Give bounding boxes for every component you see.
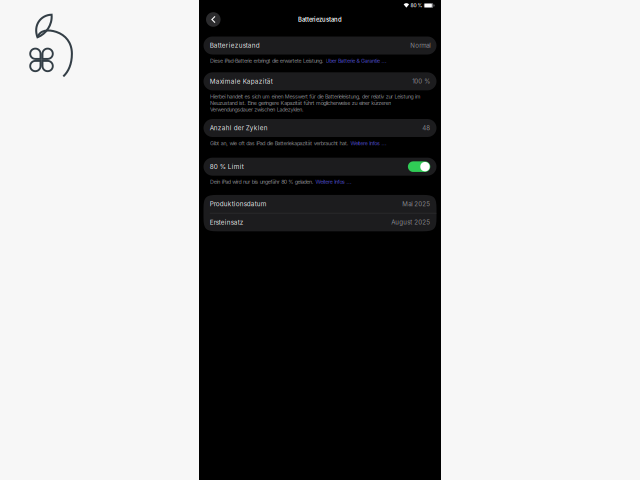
staticText: Diese iPad-Batterie erbringt die erwarte…	[210, 57, 325, 64]
staticText: August 2025	[391, 219, 430, 226]
staticText: 100 %	[412, 78, 430, 85]
staticText: Mai 2025	[402, 200, 430, 208]
staticText: 48	[422, 124, 430, 132]
staticText: Weitere Infos ...	[350, 140, 387, 146]
staticText: Anzahl der Zyklen	[210, 124, 268, 132]
staticText: Hierbei handelt es sich um einen Messwer…	[210, 93, 421, 113]
staticText: Batteriezustand	[298, 16, 342, 23]
staticText: Weitere Infos ...	[315, 179, 352, 185]
button[interactable]: Batteriezustand	[203, 36, 436, 54]
button[interactable]: Produktionsdatum	[203, 195, 436, 213]
staticText: Maximale Kapazität	[210, 77, 273, 85]
staticText: Dein iPad wird nur bis ungefähr 80 % gel…	[210, 179, 315, 185]
button[interactable]: Zurück	[204, 10, 222, 28]
button[interactable]: Anzahl der Zyklen	[203, 119, 436, 137]
button[interactable]: Ersteinsatz	[203, 213, 436, 231]
staticText: Gibt an, wie oft das iPad die Batterieka…	[210, 140, 350, 146]
button[interactable]: Weitere Infos ...	[315, 179, 352, 185]
staticText: Produktionsdatum	[210, 200, 267, 208]
button[interactable]: Über Batterie & Garantie ...	[325, 57, 387, 64]
button[interactable]: 80 % Limit	[203, 158, 436, 176]
staticText: 80 % Limit	[210, 163, 244, 170]
staticText: Normal	[410, 42, 430, 49]
button[interactable]: Weitere Infos ...	[350, 140, 387, 146]
staticText: 80 %	[410, 2, 422, 8]
staticText: Über Batterie & Garantie ...	[325, 57, 387, 64]
staticText: Batteriezustand	[210, 42, 260, 49]
staticText: Ersteinsatz	[210, 218, 244, 226]
button[interactable]: Maximale Kapazität	[203, 72, 436, 90]
